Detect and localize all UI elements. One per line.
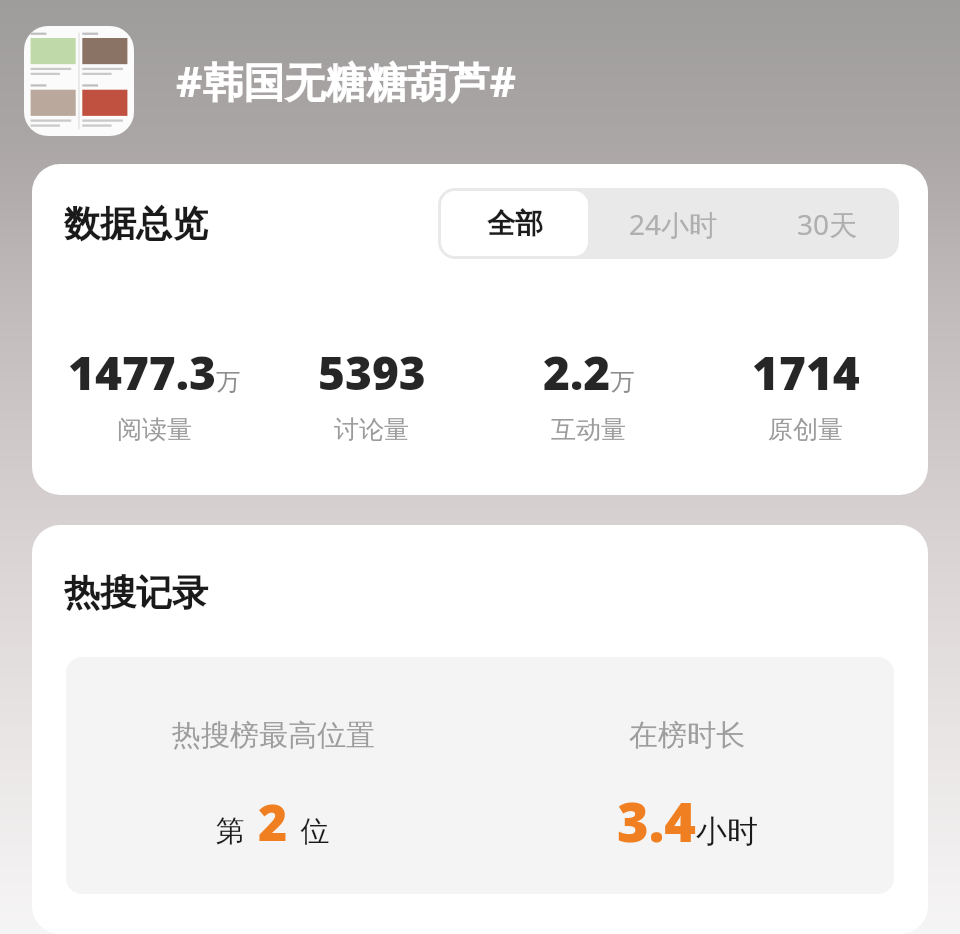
staticText: 数据总览	[64, 201, 208, 246]
staticText: 热搜记录	[64, 570, 208, 615]
staticText: 热搜榜最高位置	[172, 717, 375, 754]
staticText: 在榜时长	[629, 717, 745, 754]
button[interactable]: 1714	[697, 341, 914, 445]
button[interactable]: 5393	[263, 341, 480, 445]
staticText: 第 2 位	[216, 788, 330, 856]
staticText: 24小时	[629, 205, 718, 243]
button[interactable]: 2.2万	[480, 341, 697, 445]
button[interactable]: 1477.3万	[46, 341, 263, 445]
button[interactable]: 24小时	[594, 191, 753, 256]
button[interactable]: Topic thumbnail	[24, 26, 134, 136]
button[interactable]: #韩国无糖糖葫芦#	[176, 53, 516, 109]
staticText: 3.4小时	[617, 784, 758, 858]
button[interactable]: 30天	[759, 191, 896, 256]
staticText: 全部	[487, 206, 543, 241]
staticText: 互动量	[551, 414, 626, 445]
staticText: 2.2万	[543, 341, 635, 404]
staticText: 1714	[752, 341, 860, 404]
staticText: 30天	[797, 205, 858, 243]
staticText: 1477.3万	[68, 341, 241, 404]
button[interactable]: 热搜榜最高位置	[66, 657, 894, 894]
staticText: 讨论量	[334, 414, 409, 445]
staticText: 原创量	[768, 414, 843, 445]
staticText: 5393	[318, 341, 426, 404]
button[interactable]: 全部	[441, 191, 588, 256]
staticText: 阅读量	[117, 414, 192, 445]
